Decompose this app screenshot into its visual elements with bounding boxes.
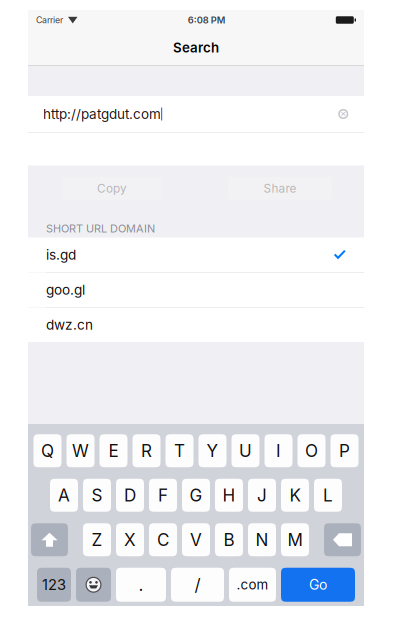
staticText: J [257,485,267,505]
button[interactable]: A [50,479,78,512]
staticText: U [239,440,252,461]
button[interactable]: goo.gl [28,272,364,307]
button[interactable]: D [116,479,144,512]
button[interactable]: Go [281,568,355,602]
button[interactable]: Shift [31,523,68,556]
staticText: G [189,485,202,505]
staticText: 123 [42,576,66,594]
staticText: Share [263,181,296,196]
staticText: Y [206,440,218,461]
staticText: X [124,529,136,550]
staticText: A [58,485,70,505]
button[interactable]: Delete [324,523,361,556]
button[interactable]: U [231,434,259,467]
button[interactable]: I [264,434,292,467]
button[interactable]: F [149,479,177,512]
staticText: SHORT URL DOMAIN [46,222,155,235]
button[interactable]: J [248,479,276,512]
staticText: M [287,529,302,550]
button[interactable]: dwz.cn [28,307,364,342]
staticText: / [194,574,200,595]
button[interactable]: 123 [37,568,71,602]
staticText: H [222,485,235,505]
button[interactable]: Share [227,176,332,200]
staticText: Copy [97,181,127,196]
button[interactable]: X [116,523,144,556]
staticText: W [72,440,89,461]
staticText: dwz.cn [46,316,93,333]
button[interactable]: L [314,479,342,512]
button[interactable]: http://patgdut.com [28,96,364,132]
staticText: ✕ [340,110,346,118]
staticText: P [339,440,350,461]
button[interactable]: W [66,434,94,467]
button[interactable]: / [171,568,224,602]
button[interactable]: M [281,523,309,556]
staticText: 6:08 PM [188,14,226,26]
staticText: .com [236,577,268,593]
staticText: http://patgdut.com [43,106,161,122]
button[interactable]: Q [33,434,61,467]
button[interactable]: E [99,434,127,467]
staticText: S [91,485,102,505]
staticText: C [157,529,169,550]
button[interactable]: K [281,479,309,512]
staticText: Search [173,40,219,56]
staticText: F [158,485,168,505]
button[interactable]: B [215,523,243,556]
staticText: . [138,574,143,595]
button[interactable]: N [248,523,276,556]
button[interactable]: Y [198,434,226,467]
staticText: R [141,440,152,461]
staticText: B [223,529,234,550]
button[interactable]: V [182,523,210,556]
staticText: O [305,440,318,461]
staticText: N [255,529,268,550]
staticText: Q [41,440,54,461]
button[interactable]: Emoji keyboard [76,568,111,602]
button[interactable]: H [215,479,243,512]
button[interactable]: T [165,434,193,467]
staticText: K [289,485,300,505]
staticText: Z [91,529,102,550]
staticText: E [108,440,118,461]
button[interactable]: R [132,434,160,467]
button[interactable]: S [83,479,111,512]
staticText: T [174,440,185,461]
staticText: I [276,440,281,461]
staticText: is.gd [46,246,76,263]
button[interactable]: Z [83,523,111,556]
staticText: L [323,485,333,505]
button[interactable]: .com [229,568,276,602]
button[interactable]: P [330,434,358,467]
button[interactable]: O [297,434,325,467]
button[interactable]: Copy [62,176,161,200]
staticText: Carrier [36,15,63,25]
button[interactable]: is.gd [28,237,364,272]
button[interactable]: G [182,479,210,512]
staticText: D [124,485,136,505]
staticText: goo.gl [46,281,85,298]
button[interactable]: C [149,523,177,556]
button[interactable]: . [116,568,166,602]
staticText: V [190,529,202,550]
staticText: Go [309,576,327,593]
